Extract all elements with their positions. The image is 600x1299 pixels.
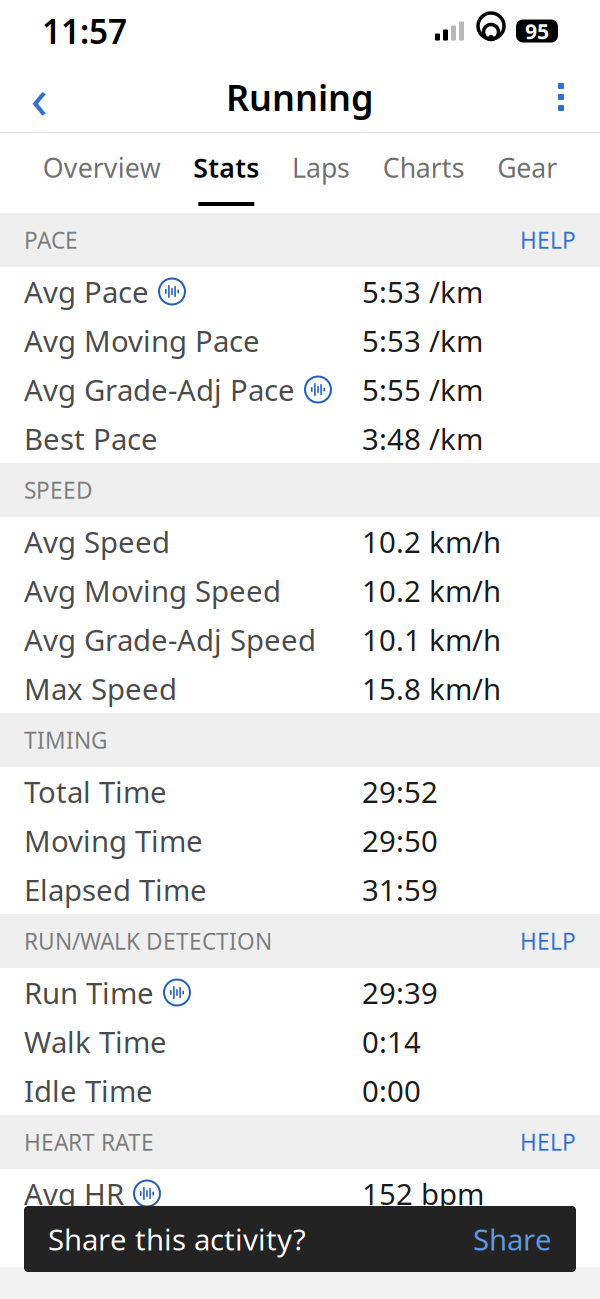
button[interactable]: Max HR: [0, 1218, 600, 1267]
button[interactable]: Idle Time: [0, 1066, 600, 1115]
button[interactable]: Elapsed Time: [0, 865, 600, 914]
button[interactable]: Avg Moving Speed: [0, 566, 600, 615]
staticText: 95: [525, 17, 549, 45]
staticText: Best Pace: [24, 419, 158, 458]
staticText: 11:57: [42, 9, 127, 53]
staticText: Run Time: [24, 973, 154, 1012]
button[interactable]: Run Time: [0, 968, 600, 1017]
button[interactable]: Moving Time: [0, 816, 600, 865]
staticText: 15.8 km/h: [362, 669, 501, 708]
staticText: Avg Moving Pace: [24, 321, 260, 360]
staticText: Avg Moving Speed: [24, 571, 281, 610]
button[interactable]: Avg HR: [0, 1169, 600, 1218]
staticText: Running: [226, 73, 374, 121]
staticText: ‹: [30, 60, 47, 134]
staticText: 29:50: [362, 821, 438, 860]
staticText: TIMING: [24, 725, 108, 755]
staticText: Avg Grade-Adj Speed: [24, 620, 316, 659]
button[interactable]: Max Speed: [0, 664, 600, 713]
staticText: 3:48 /km: [362, 419, 483, 458]
staticText: Max Speed: [24, 669, 177, 708]
button[interactable]: Avg Moving Pace: [0, 316, 600, 365]
staticText: SPEED: [24, 475, 93, 505]
button[interactable]: Overview: [43, 133, 161, 213]
staticText: 31:59: [362, 870, 438, 909]
staticText: RUN/WALK DETECTION: [24, 926, 272, 956]
staticText: 5:53 /km: [362, 321, 483, 360]
button[interactable]: HELP: [520, 926, 576, 956]
staticText: Avg Pace: [24, 272, 149, 311]
staticText: HELP: [520, 1127, 576, 1157]
button[interactable]: Back: [12, 70, 66, 124]
button[interactable]: HELP: [520, 225, 576, 255]
button[interactable]: Avg Pace: [0, 267, 600, 316]
staticText: Avg Speed: [24, 522, 170, 561]
staticText: Gear: [497, 150, 557, 185]
staticText: 29:39: [362, 973, 438, 1012]
button[interactable]: Avg Speed: [0, 517, 600, 566]
staticText: 10.2 km/h: [362, 571, 501, 610]
staticText: Avg Grade-Adj Pace: [24, 370, 295, 409]
staticText: 29:52: [362, 772, 438, 811]
staticText: Max HR: [24, 1223, 131, 1262]
staticText: Overview: [43, 150, 161, 185]
staticText: Laps: [292, 150, 350, 185]
button[interactable]: HELP: [520, 1127, 576, 1157]
staticText: 152 bpm: [362, 1174, 484, 1213]
staticText: Elapsed Time: [24, 870, 207, 909]
staticText: Idle Time: [24, 1071, 153, 1110]
staticText: 10.2 km/h: [362, 522, 501, 561]
button[interactable]: Walk Time: [0, 1017, 600, 1066]
staticText: 171 bpm: [362, 1223, 484, 1262]
staticText: 0:14: [362, 1022, 421, 1061]
staticText: 5:53 /km: [362, 272, 483, 311]
button[interactable]: Avg Grade-Adj Speed: [0, 615, 600, 664]
staticText: PACE: [24, 225, 78, 255]
button[interactable]: Charts: [383, 133, 465, 213]
staticText: Avg HR: [24, 1174, 124, 1213]
button[interactable]: Laps: [292, 133, 350, 213]
staticText: 5:55 /km: [362, 370, 483, 409]
button[interactable]: Avg Grade-Adj Pace: [0, 365, 600, 414]
staticText: Moving Time: [24, 821, 203, 860]
staticText: Walk Time: [24, 1022, 167, 1061]
button[interactable]: Best Pace: [0, 414, 600, 463]
staticText: Total Time: [24, 772, 167, 811]
staticText: Stats: [193, 150, 259, 185]
staticText: HELP: [520, 926, 576, 956]
staticText: Share: [473, 1219, 552, 1258]
staticText: Charts: [383, 150, 465, 185]
button[interactable]: Stats: [193, 133, 259, 213]
staticText: HEART RATE: [24, 1127, 154, 1157]
staticText: 0:00: [362, 1071, 421, 1110]
staticText: HELP: [520, 225, 576, 255]
staticText: Share this activity?: [48, 1219, 306, 1258]
button[interactable]: More options: [534, 70, 588, 124]
staticText: 10.1 km/h: [362, 620, 501, 659]
button[interactable]: Gear: [497, 133, 557, 213]
button[interactable]: Total Time: [0, 767, 600, 816]
button[interactable]: Share this activity?: [24, 1206, 576, 1272]
